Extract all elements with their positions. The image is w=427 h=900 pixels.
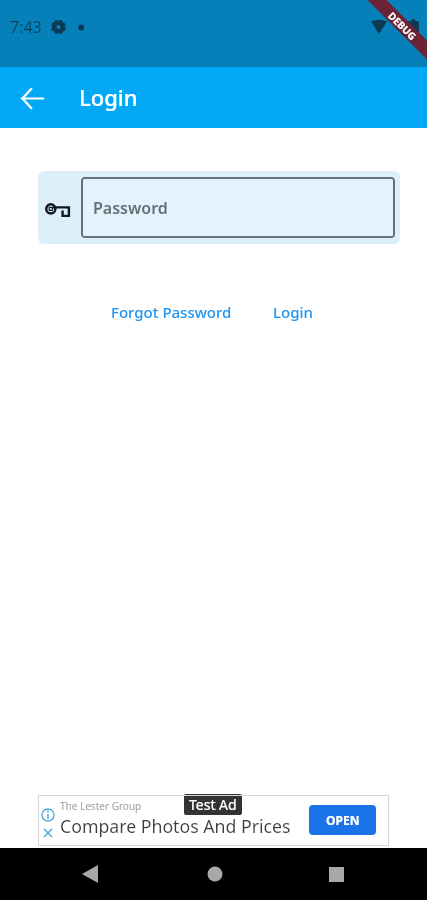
staticText: Forgot Password [111, 302, 232, 322]
button[interactable]: Back [16, 82, 48, 114]
staticText: Login [273, 302, 313, 322]
staticText: DEBUG [385, 9, 420, 43]
button[interactable]: Home [185, 848, 245, 900]
button[interactable]: The Lester Group [38, 795, 389, 846]
button[interactable]: Login [269, 296, 317, 328]
staticText: Login [79, 82, 138, 112]
button[interactable]: Back [60, 848, 120, 900]
staticText: Password [93, 197, 168, 219]
staticText: Test Ad [189, 795, 237, 814]
button[interactable]: OPEN [309, 805, 376, 835]
button[interactable]: Forgot Password [107, 296, 236, 328]
button[interactable]: Recent apps [306, 848, 366, 900]
button[interactable]: Password [81, 177, 395, 238]
staticText: The Lester Group [60, 799, 142, 813]
staticText: OPEN [326, 812, 360, 828]
staticText: 7:43 [10, 16, 42, 38]
staticText: Compare Photos And Prices [60, 814, 291, 838]
